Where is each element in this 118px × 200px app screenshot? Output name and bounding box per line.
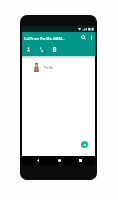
button[interactable]: Back (31, 156, 45, 165)
button[interactable]: Messages (48, 43, 61, 56)
staticText: Call From The Mic 44684... (24, 36, 65, 40)
button[interactable]: More options (88, 32, 95, 43)
button[interactable]: Calls (35, 43, 48, 56)
button[interactable]: Contacts (22, 43, 35, 56)
button[interactable]: Search (79, 32, 88, 43)
button[interactable]: New conversation (81, 141, 88, 148)
button[interactable]: The Mic (22, 61, 95, 74)
button[interactable]: Home (52, 156, 66, 165)
staticText: The Mic (44, 66, 54, 70)
button[interactable]: Recent apps (73, 156, 87, 165)
